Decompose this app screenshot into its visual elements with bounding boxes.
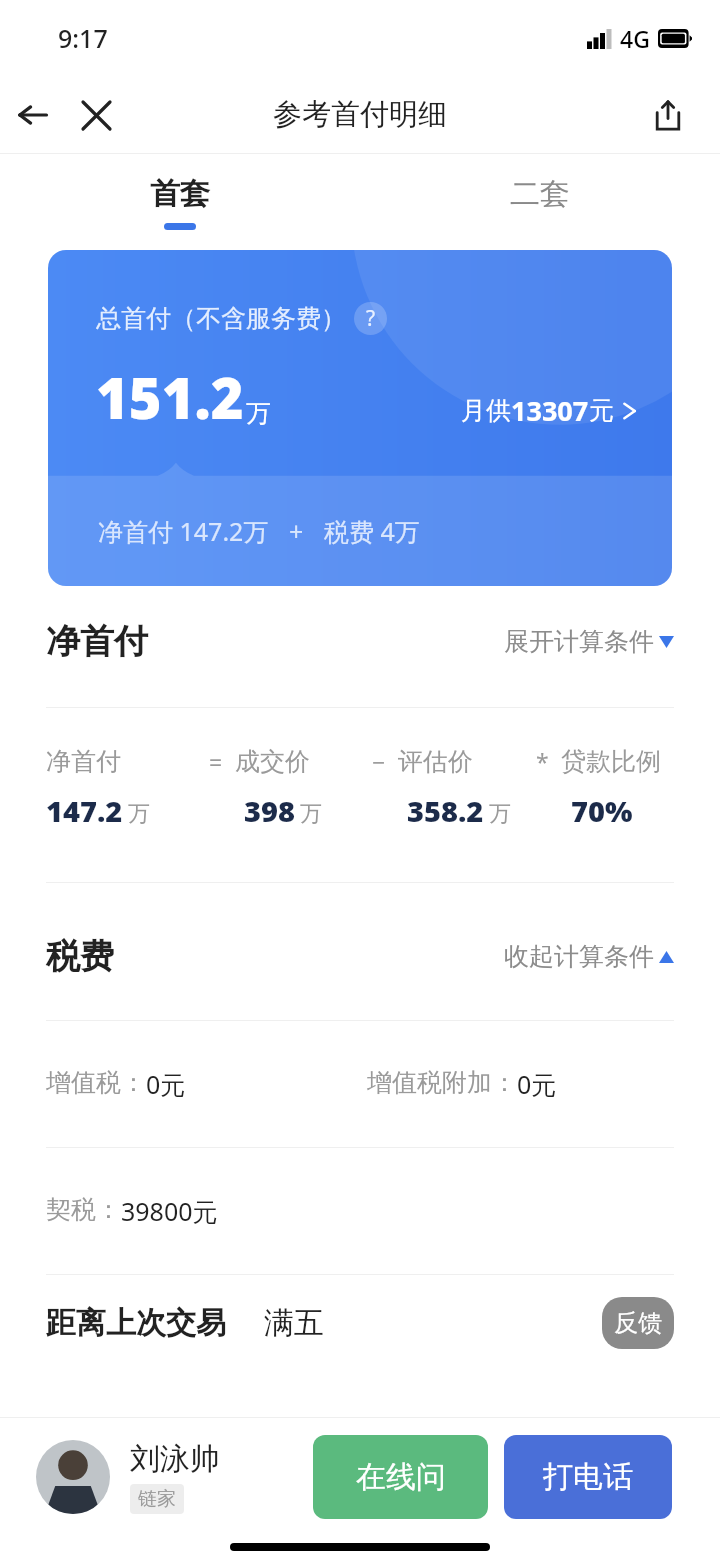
staticText: 398 [244,791,295,830]
button[interactable]: 首套 [0,154,360,250]
button[interactable]: Help [354,302,387,335]
staticText: 元 [589,395,614,426]
staticText: 契税： [46,1194,121,1225]
staticText: 月供 [461,395,511,426]
button[interactable]: 展开计算条件 [504,626,674,657]
staticText: 展开计算条件 [504,626,654,657]
staticText: 万 [246,398,271,429]
staticText: 358.2 [407,791,484,830]
staticText: * [536,746,549,777]
staticText: 二套 [510,175,570,213]
staticText: 距离上次交易 [46,1304,226,1342]
button[interactable]: 总首付（不含服务费） [48,250,672,586]
staticText: 4G [620,23,650,54]
staticText: 链家 [138,1487,176,1511]
button[interactable]: Back [0,82,66,148]
staticText: 满五 [264,1304,324,1342]
staticText: 151.2 [96,359,244,435]
staticText: 净首付 [46,746,121,777]
staticText: 首套 [150,175,210,213]
staticText: 147.2 [46,791,123,830]
staticText: 39800元 [121,1194,218,1228]
staticText: 在线问 [356,1458,446,1496]
button[interactable]: 打电话 [504,1435,672,1519]
staticText: 增值税： [46,1067,146,1098]
button[interactable]: 在线问 [313,1435,488,1519]
staticText: 总首付（不含服务费） [96,303,346,334]
staticText: 净首付 147.2万 [98,514,269,548]
staticText: − [372,746,386,777]
staticText: 9:17 [58,21,108,55]
button[interactable]: Close [66,85,126,145]
staticText: 70% [571,791,633,830]
staticText: 贷款比例 [561,746,661,777]
button[interactable]: 二套 [360,154,720,250]
staticText: 万 [489,800,511,828]
button[interactable]: 收起计算条件 [504,941,674,972]
staticText: 增值税附加： [367,1067,517,1098]
staticText: 13307 [511,392,589,429]
staticText: 万 [128,800,150,828]
staticText: 0元 [517,1067,557,1101]
staticText: + [289,514,304,548]
staticText: 成交价 [235,746,310,777]
staticText: 税费 4万 [324,514,420,548]
button[interactable]: Share [638,85,698,145]
button[interactable]: 反馈 [602,1297,674,1349]
staticText: 打电话 [543,1458,633,1496]
staticText: 0元 [146,1067,186,1101]
staticText: 评估价 [398,746,473,777]
staticText: 万 [300,800,322,828]
button[interactable]: 刘泳帅 [36,1440,220,1514]
staticText: 税费 [46,935,114,978]
staticText: 参考首付明细 [273,96,447,133]
staticText: 刘泳帅 [130,1440,220,1478]
button[interactable]: 月供 [461,392,638,435]
staticText: ? [366,304,376,333]
staticText: = [209,746,223,777]
staticText: 反馈 [614,1308,662,1338]
staticText: 收起计算条件 [504,941,654,972]
staticText: 净首付 [46,620,148,663]
